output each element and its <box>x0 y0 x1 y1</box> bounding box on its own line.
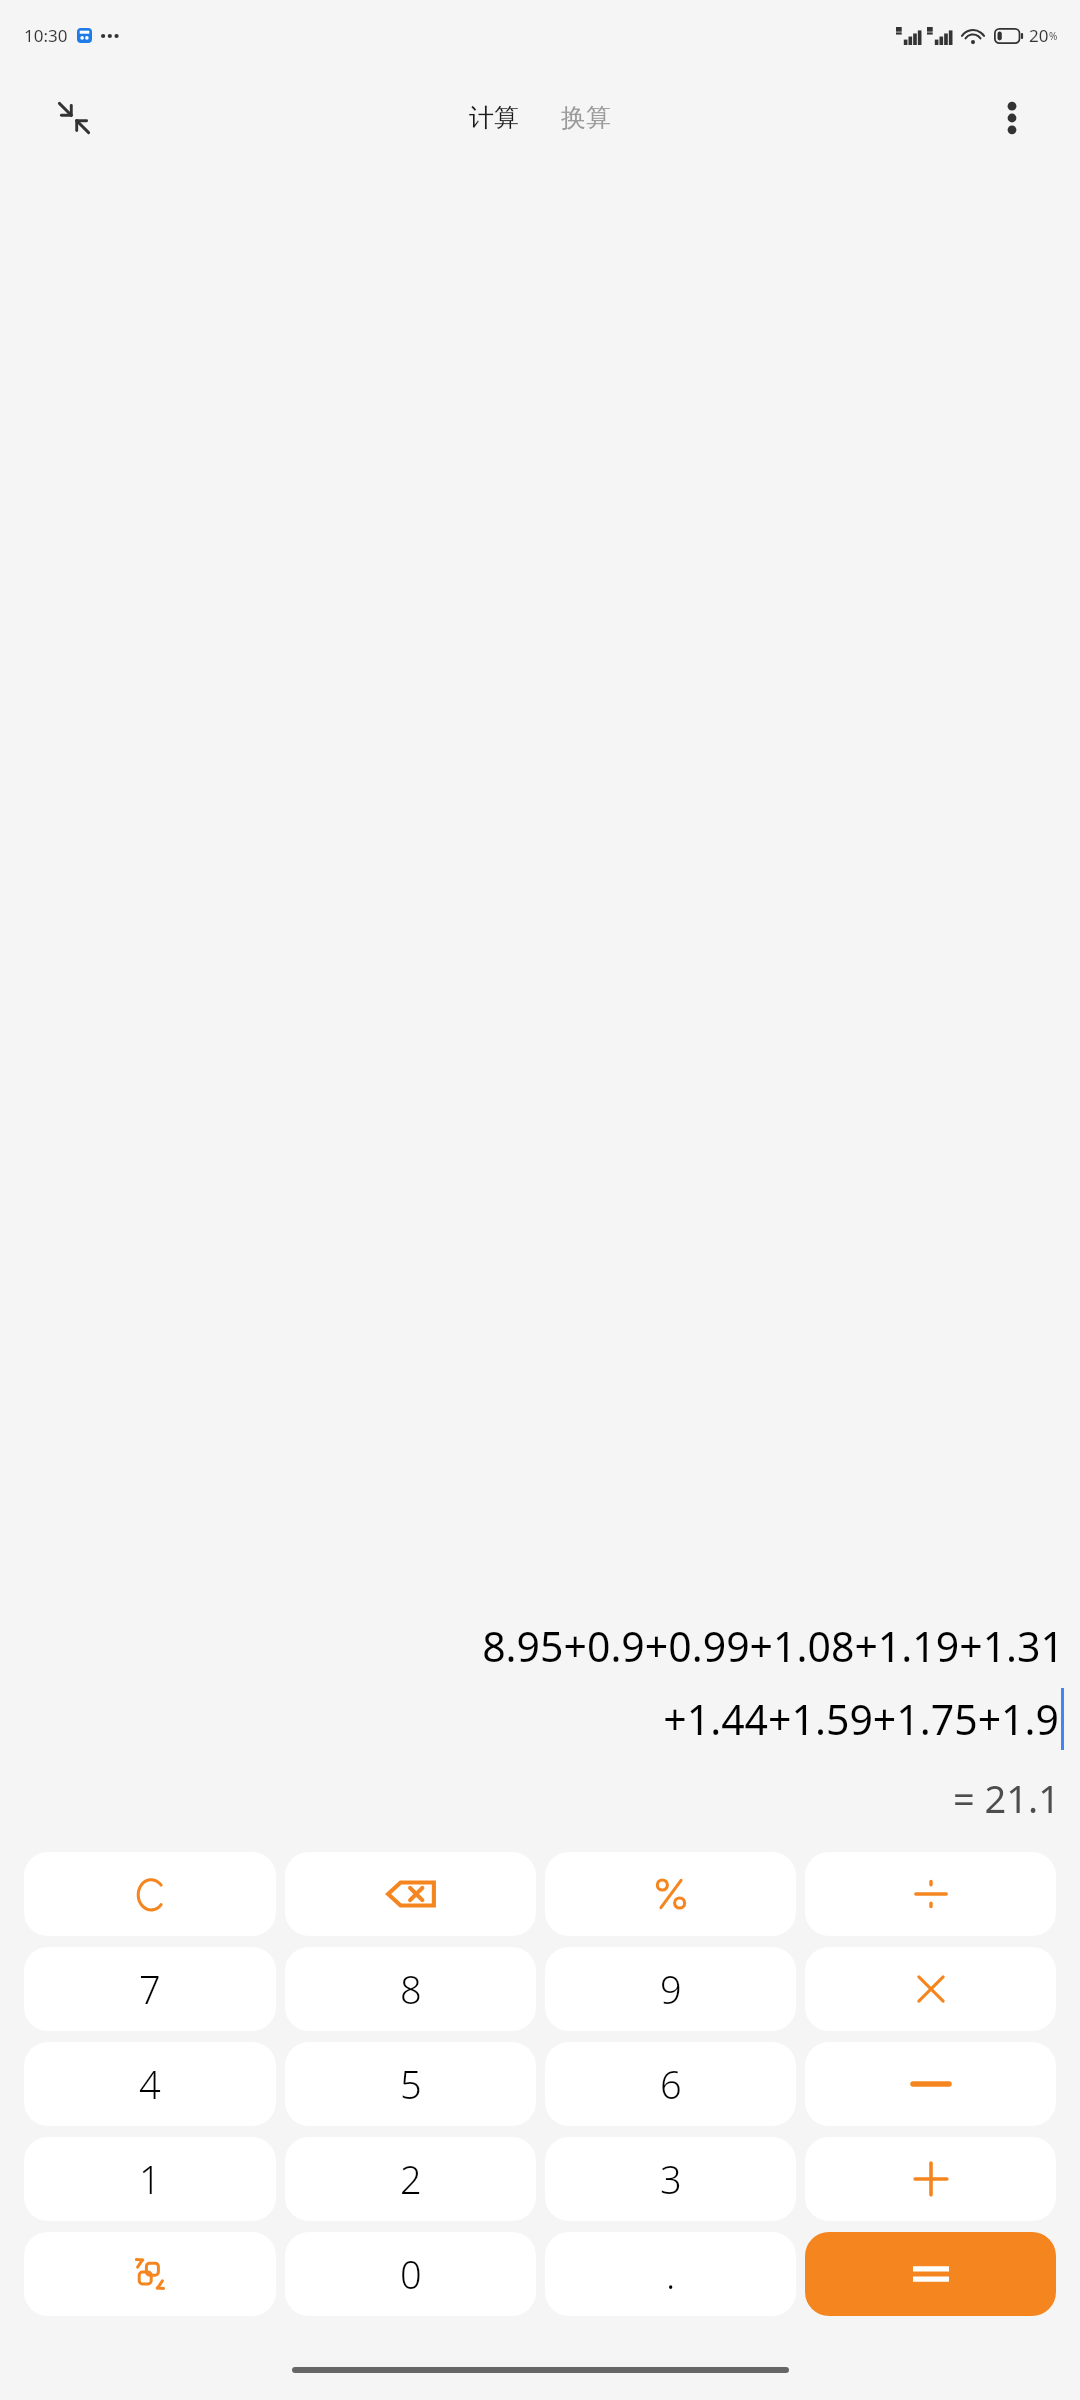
staticText: 换算 <box>561 102 611 133</box>
staticText: 5 <box>400 2058 422 2110</box>
staticText: 2 <box>400 2153 422 2205</box>
staticText: 8 <box>400 1963 422 2015</box>
button[interactable]: . <box>545 2232 796 2316</box>
staticText: +1.44+1.59+1.75+1.9 <box>663 1691 1059 1747</box>
staticText: 3 <box>660 2153 682 2205</box>
staticText: % <box>1049 29 1058 43</box>
button[interactable]: 1 <box>24 2137 276 2221</box>
button[interactable]: 换算 <box>551 94 621 141</box>
staticText: = 21.1 <box>952 1772 1060 1824</box>
staticText: 0 <box>400 2248 422 2300</box>
button[interactable]: Collapse <box>44 88 104 148</box>
button[interactable]: Minus <box>805 2042 1056 2126</box>
button[interactable]: Plus <box>805 2137 1056 2221</box>
button[interactable]: 6 <box>545 2042 796 2126</box>
button[interactable]: Unit conversion <box>24 2232 276 2316</box>
button[interactable]: Multiply <box>805 1947 1056 2031</box>
button[interactable]: 计算 <box>459 94 529 141</box>
button[interactable]: 3 <box>545 2137 796 2221</box>
button[interactable]: 0 <box>285 2232 536 2316</box>
staticText: 计算 <box>469 102 519 133</box>
button[interactable]: 9 <box>545 1947 796 2031</box>
staticText: 4 <box>139 2058 161 2110</box>
staticText: 7 <box>139 1963 161 2015</box>
staticText: . <box>666 2248 676 2300</box>
button[interactable]: Clear <box>24 1852 276 1936</box>
staticText: 9 <box>660 1963 682 2015</box>
button[interactable]: Equals <box>805 2232 1056 2316</box>
button[interactable]: Percent <box>545 1852 796 1936</box>
staticText: 1 <box>139 2153 161 2205</box>
button[interactable]: More options <box>982 88 1042 148</box>
button[interactable]: 4 <box>24 2042 276 2126</box>
button[interactable]: 8 <box>285 1947 536 2031</box>
button[interactable]: 5 <box>285 2042 536 2126</box>
staticText: 10:30 <box>24 24 68 47</box>
button[interactable]: 7 <box>24 1947 276 2031</box>
staticText: 8.95+0.9+0.99+1.08+1.19+1.31 <box>482 1618 1064 1674</box>
button[interactable]: Divide <box>805 1852 1056 1936</box>
staticText: 6 <box>660 2058 682 2110</box>
button[interactable]: 2 <box>285 2137 536 2221</box>
staticText: 20 <box>1029 24 1049 47</box>
button[interactable]: Backspace <box>285 1852 536 1936</box>
